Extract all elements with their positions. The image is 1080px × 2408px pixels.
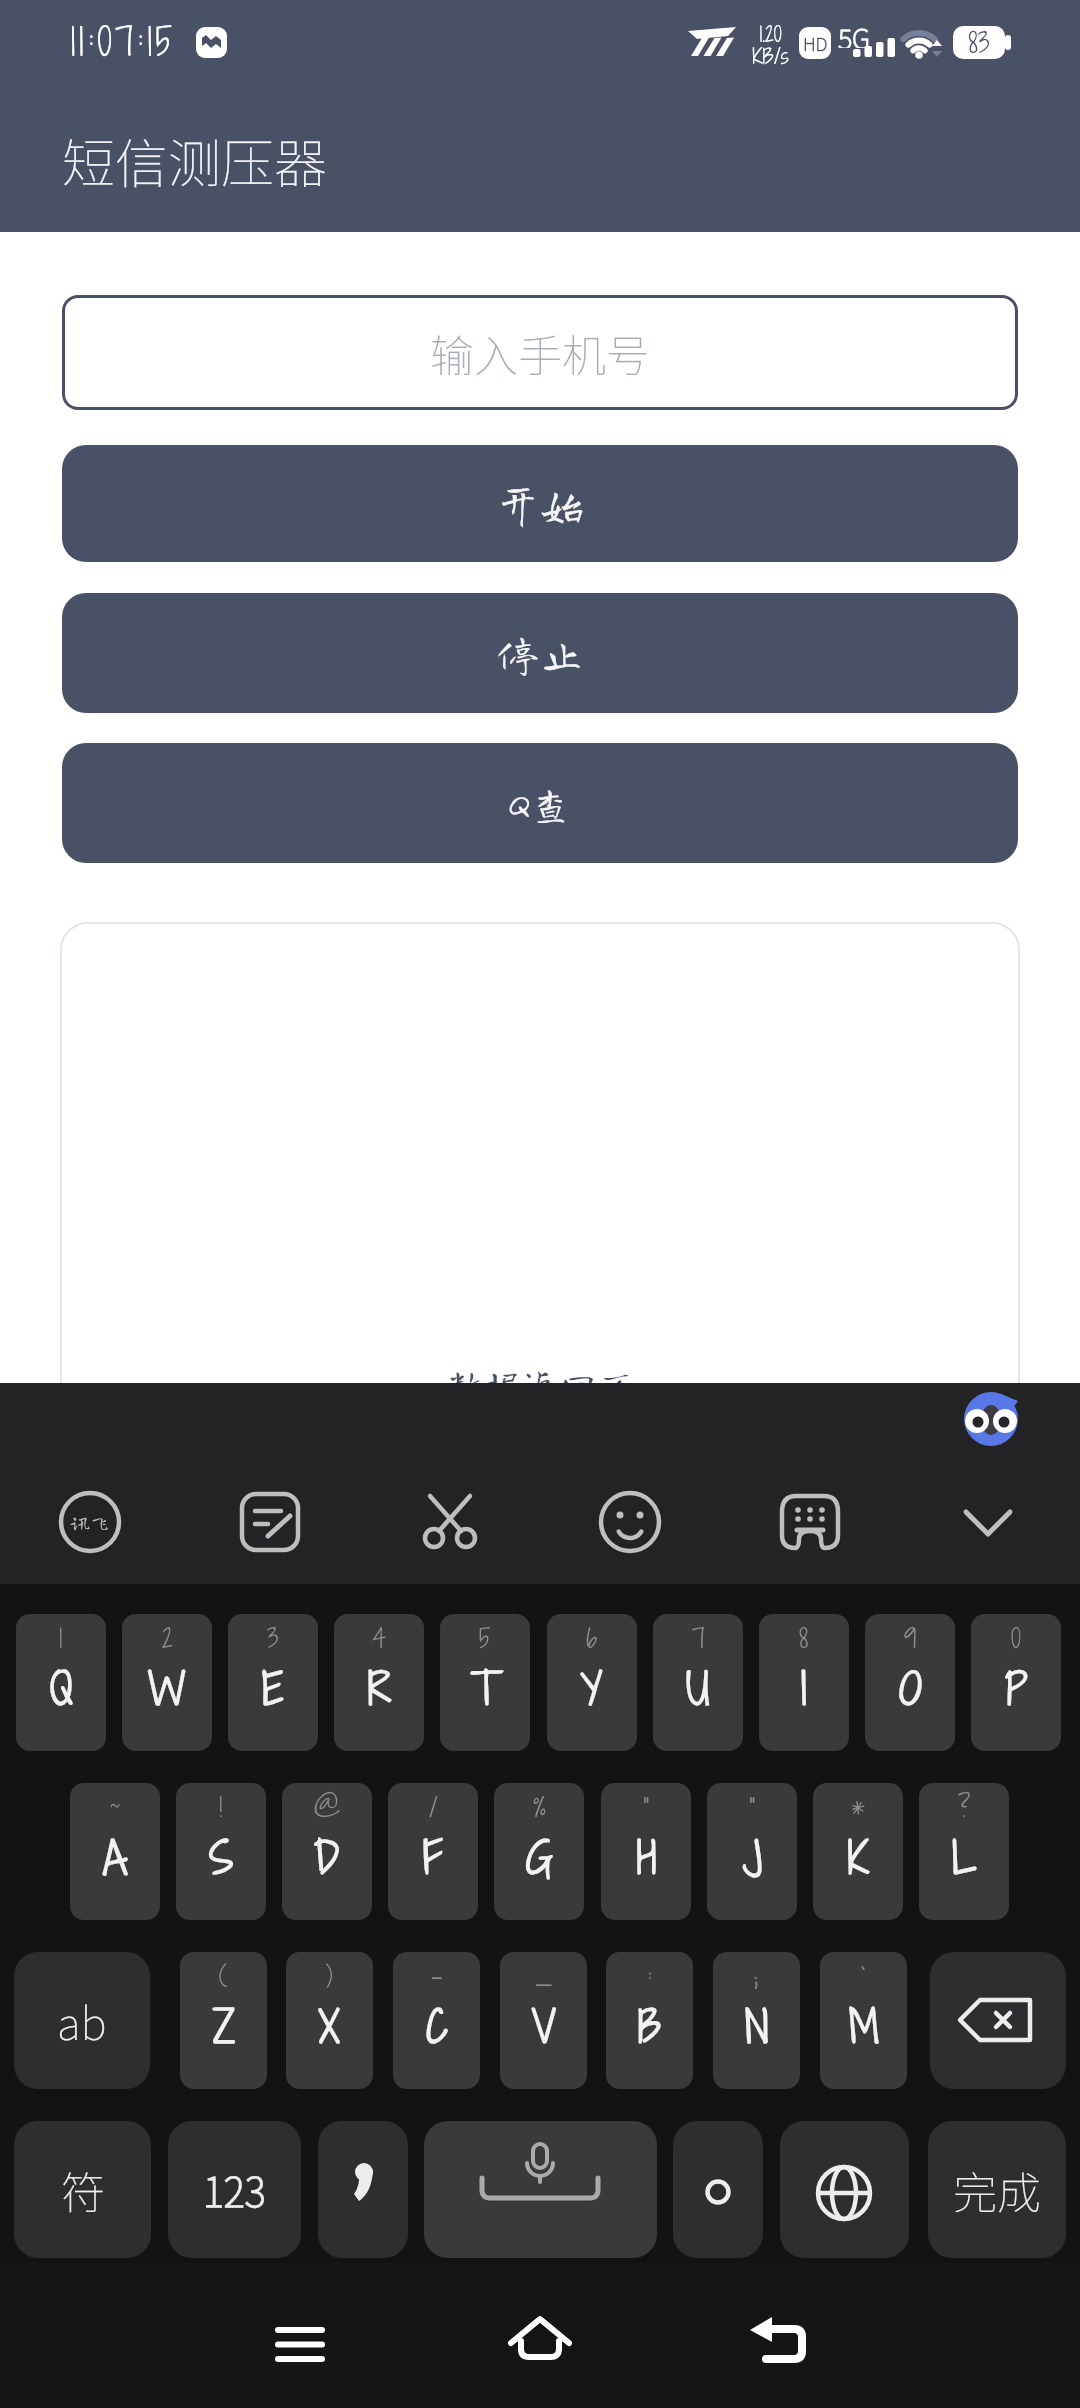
button[interactable]: [416, 1488, 484, 1556]
button[interactable]: ): [286, 1952, 373, 2089]
button[interactable]: [262, 2306, 338, 2382]
button[interactable]: [930, 1952, 1066, 2089]
button[interactable]: _: [500, 1952, 587, 2089]
button[interactable]: ;: [713, 1952, 800, 2089]
staticText: I: [801, 1659, 807, 1718]
staticText: 8: [799, 1620, 809, 1656]
staticText: J: [743, 1828, 762, 1887]
button[interactable]: 7: [653, 1614, 743, 1751]
staticText: N: [745, 1997, 769, 2056]
staticText: 5: [479, 1620, 491, 1656]
staticText: 9: [904, 1620, 917, 1656]
button[interactable]: ": [707, 1783, 797, 1920]
button[interactable]: 5: [440, 1614, 530, 1751]
staticText: ?: [958, 1789, 971, 1825]
staticText: L: [952, 1828, 977, 1887]
button[interactable]: [962, 1390, 1020, 1448]
button[interactable]: 8: [759, 1614, 849, 1751]
staticText: 完成: [953, 2158, 1041, 2222]
button[interactable]: 停止: [62, 593, 1018, 713]
staticText: 1.20: [759, 20, 782, 44]
staticText: E: [262, 1659, 284, 1718]
button[interactable]: ": [601, 1783, 691, 1920]
button[interactable]: [776, 1488, 844, 1556]
button[interactable]: @: [282, 1783, 372, 1920]
button[interactable]: [742, 2306, 818, 2382]
button[interactable]: (: [180, 1952, 267, 2089]
staticText: ~: [110, 1789, 120, 1825]
button[interactable]: [318, 2121, 408, 2258]
button[interactable]: ~: [70, 1783, 160, 1920]
staticText: 4: [372, 1620, 386, 1656]
staticText: KB/s: [752, 42, 789, 66]
staticText: ab: [57, 1989, 107, 2053]
staticText: ;: [754, 1958, 759, 1994]
staticText: S: [209, 1828, 234, 1887]
button[interactable]: 输入手机号: [62, 295, 1018, 410]
staticText: G: [526, 1828, 553, 1887]
button[interactable]: [56, 1488, 124, 1556]
button[interactable]: 3: [228, 1614, 318, 1751]
button[interactable]: [596, 1488, 664, 1556]
button[interactable]: 9: [865, 1614, 955, 1751]
staticText: 短信测压器: [62, 122, 327, 199]
staticText: 0: [1011, 1620, 1021, 1656]
button[interactable]: ?: [919, 1783, 1009, 1920]
button[interactable]: 完成: [928, 2121, 1066, 2258]
button[interactable]: [673, 2121, 763, 2258]
staticText: 123: [203, 2161, 266, 2219]
staticText: 2: [162, 1620, 173, 1656]
staticText: :: [647, 1958, 652, 1994]
staticText: Z: [213, 1997, 235, 2056]
staticText: P: [1005, 1659, 1028, 1718]
button[interactable]: `: [820, 1952, 907, 2089]
staticText: M: [849, 1997, 879, 2056]
staticText: 5G: [838, 18, 870, 48]
button[interactable]: /: [388, 1783, 478, 1920]
button[interactable]: ab: [14, 1952, 150, 2089]
staticText: 数据返回区: [445, 1365, 636, 1403]
button[interactable]: 开始: [62, 445, 1018, 562]
staticText: 开始: [496, 482, 584, 526]
staticText: 讯飞: [70, 1512, 110, 1532]
button[interactable]: [502, 2306, 578, 2382]
staticText: 11:07:15: [70, 16, 176, 68]
button[interactable]: 4: [334, 1614, 424, 1751]
staticText: 1: [59, 1620, 63, 1656]
staticText: Q: [50, 1659, 73, 1718]
staticText: X: [319, 1997, 340, 2056]
button[interactable]: *: [813, 1783, 903, 1920]
button[interactable]: -: [393, 1952, 480, 2089]
staticText: _: [535, 1958, 553, 1994]
staticText: 6: [586, 1620, 598, 1656]
staticText: Y: [581, 1659, 603, 1718]
button[interactable]: 0: [971, 1614, 1061, 1751]
staticText: C: [426, 1997, 448, 2056]
button[interactable]: 2: [122, 1614, 212, 1751]
button[interactable]: 符: [14, 2121, 151, 2258]
button[interactable]: %: [494, 1783, 584, 1920]
button[interactable]: [954, 1488, 1022, 1556]
button[interactable]: !: [176, 1783, 266, 1920]
button[interactable]: 6: [547, 1614, 637, 1751]
button[interactable]: [424, 2121, 657, 2258]
staticText: V: [532, 1997, 556, 2056]
staticText: HD: [803, 30, 828, 56]
staticText: D: [314, 1828, 340, 1887]
button[interactable]: Q查: [62, 743, 1018, 863]
staticText: 输入手机号: [430, 321, 650, 385]
staticText: A: [103, 1828, 128, 1887]
staticText: %: [533, 1789, 546, 1825]
staticText: 83: [968, 24, 990, 60]
staticText: 7: [692, 1620, 705, 1656]
staticText: ): [326, 1958, 333, 1994]
button[interactable]: [780, 2121, 909, 2258]
staticText: /: [429, 1789, 438, 1825]
staticText: Q查: [507, 781, 573, 825]
staticText: (: [219, 1958, 228, 1994]
staticText: U: [686, 1659, 710, 1718]
button[interactable]: 123: [168, 2121, 301, 2258]
button[interactable]: 1: [16, 1614, 106, 1751]
button[interactable]: [236, 1488, 304, 1556]
button[interactable]: :: [606, 1952, 693, 2089]
